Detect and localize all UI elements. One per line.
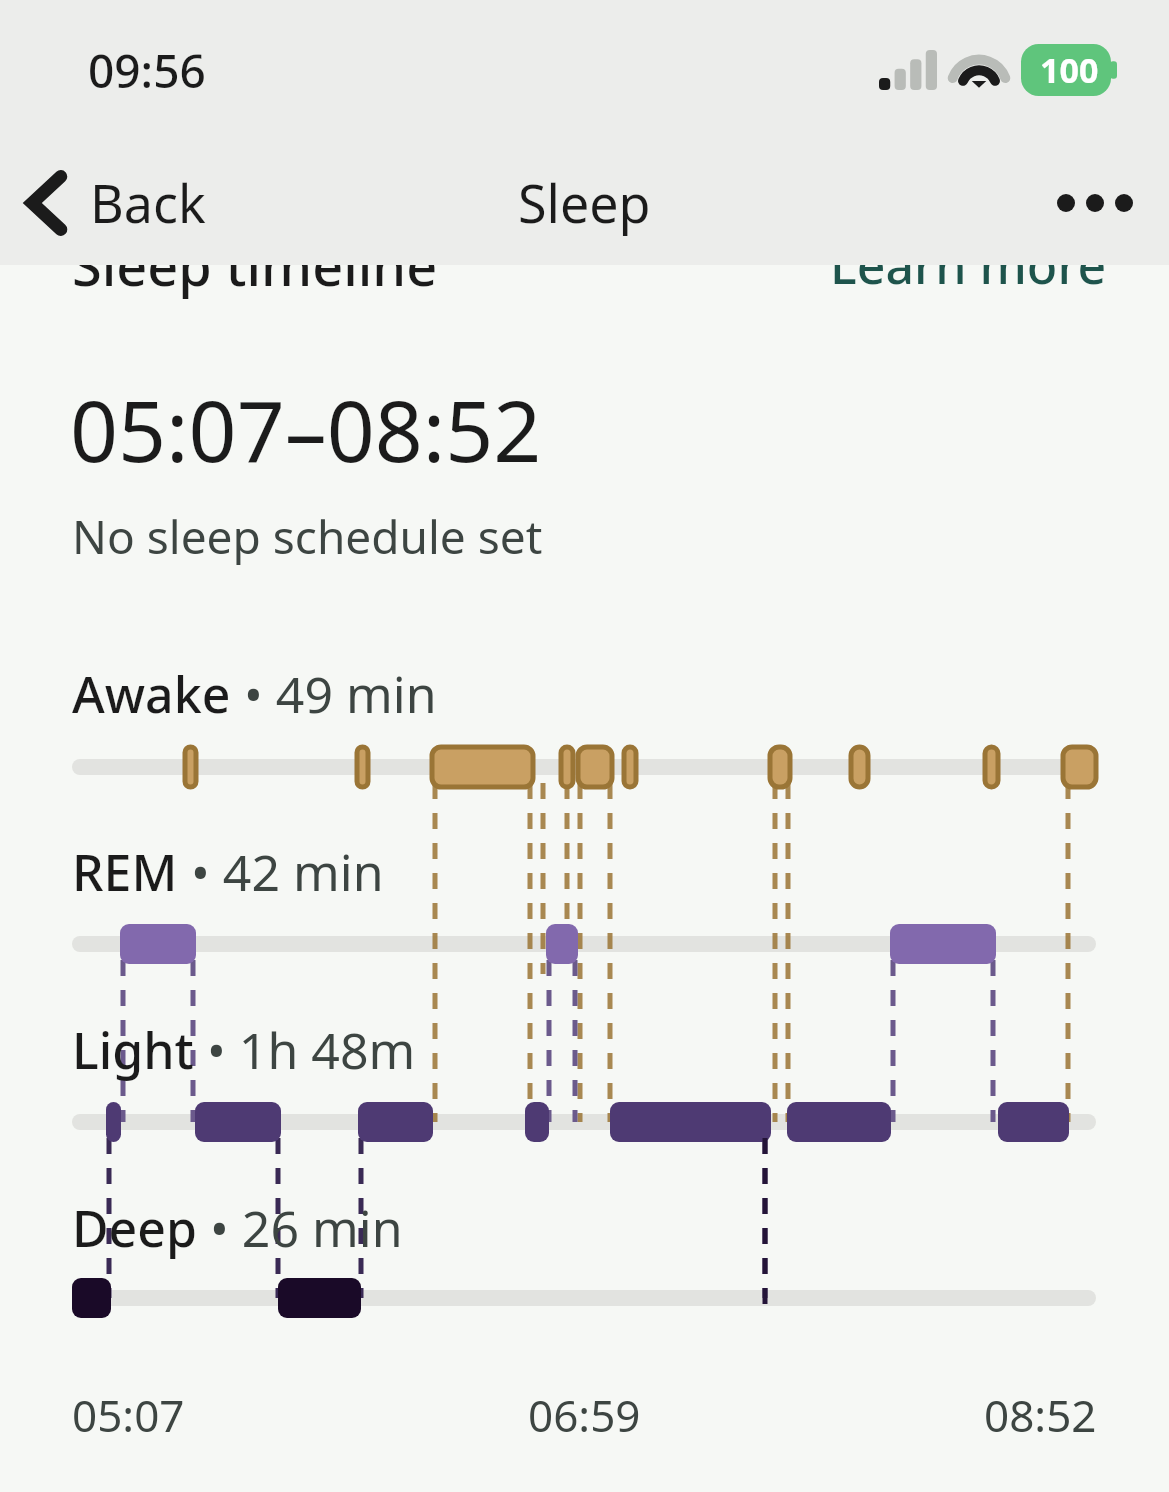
staticText: 05:07 — [72, 1385, 185, 1445]
staticText: 100 — [1040, 47, 1099, 93]
button[interactable]: Learn more — [830, 231, 1107, 299]
staticText: • 42 min — [178, 838, 384, 906]
staticText: No sleep schedule set — [72, 505, 543, 568]
staticText: Sleep timeline — [72, 228, 438, 302]
staticText: 09:56 — [88, 39, 206, 102]
staticText: • 1h 48m — [194, 1016, 416, 1084]
staticText: Light — [72, 1016, 194, 1084]
staticText: 05:07–08:52 — [70, 372, 542, 486]
staticText: Awake — [72, 660, 231, 728]
staticText: • 49 min — [231, 660, 437, 728]
staticText: Back — [90, 167, 206, 238]
staticText: Sleep — [518, 167, 651, 238]
staticText: Deep — [72, 1194, 197, 1262]
staticText: 08:52 — [984, 1385, 1097, 1445]
button[interactable]: Back — [0, 155, 224, 250]
button[interactable]: More options — [1021, 167, 1169, 239]
staticText: REM — [72, 838, 178, 906]
staticText: • 26 min — [197, 1194, 403, 1262]
staticText: 06:59 — [528, 1385, 641, 1445]
